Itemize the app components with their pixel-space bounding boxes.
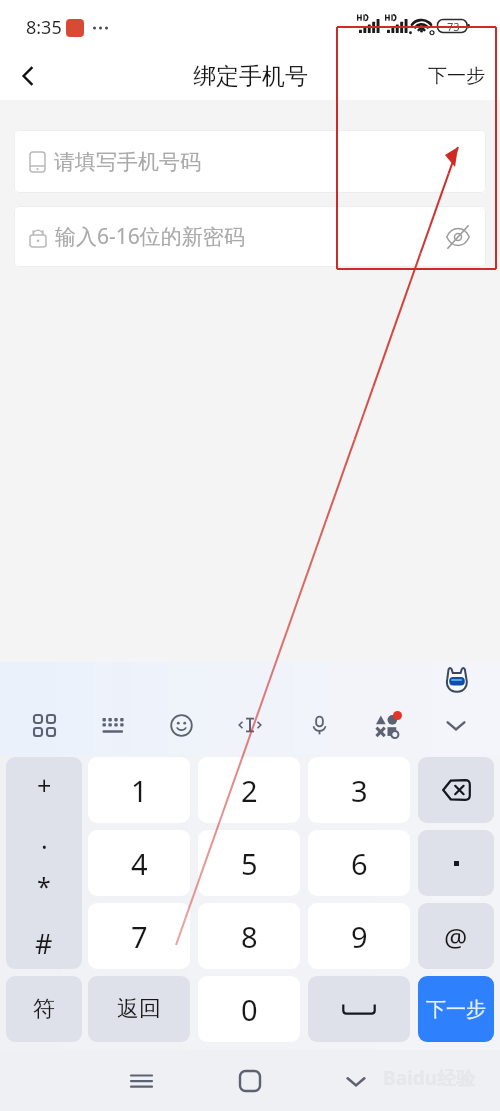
button[interactable]: 3 — [308, 757, 410, 823]
staticText: 请填写手机号码 — [54, 149, 201, 175]
button[interactable]: Voice input — [300, 706, 338, 744]
button[interactable]: @ — [418, 903, 494, 969]
button[interactable]: Keyboard layout — [94, 706, 132, 744]
button[interactable]: Assistant — [441, 664, 472, 695]
button[interactable]: Cursor — [231, 706, 269, 744]
button[interactable]: Home — [226, 1057, 274, 1105]
staticText: * — [37, 869, 51, 901]
staticText: 6 — [351, 844, 368, 883]
button[interactable]: 9 — [308, 903, 410, 969]
staticText: 73 — [447, 19, 460, 34]
button[interactable]: Show password — [440, 219, 476, 255]
staticText: · — [41, 829, 48, 861]
button[interactable]: 4 — [88, 830, 190, 896]
button[interactable]: Stickers — [368, 706, 406, 744]
staticText: 返回 — [117, 995, 161, 1023]
staticText: @ — [444, 919, 468, 954]
button[interactable]: Back — [332, 1057, 380, 1105]
staticText: 8 — [241, 917, 258, 956]
staticText: 下一步 — [426, 997, 486, 1022]
button[interactable]: 下一步 — [413, 52, 500, 100]
staticText: 0 — [241, 990, 258, 1029]
button[interactable]: 5 — [198, 830, 300, 896]
button[interactable]: . — [418, 830, 494, 896]
button[interactable]: Hide keyboard — [437, 706, 475, 744]
button[interactable]: Recent apps — [117, 1057, 165, 1105]
staticText: 3 — [351, 771, 368, 810]
staticText: 输入6-16位的新密码 — [55, 222, 245, 251]
button[interactable]: 请填写手机号码 — [14, 130, 486, 193]
staticText: 1 — [131, 771, 148, 810]
staticText: 5 — [241, 844, 258, 883]
staticText: 8:35 — [26, 15, 62, 40]
button[interactable]: 6 — [308, 830, 410, 896]
staticText: Baidu经验 — [383, 1065, 476, 1091]
button[interactable]: symbols — [6, 757, 82, 969]
staticText: 4 — [131, 844, 148, 883]
button[interactable]: Space — [308, 976, 410, 1042]
button[interactable]: 1 — [88, 757, 190, 823]
button[interactable]: 7 — [88, 903, 190, 969]
staticText: 7 — [131, 917, 148, 956]
staticText: 符 — [33, 995, 55, 1023]
button[interactable]: 输入6-16位的新密码 — [14, 206, 486, 267]
button[interactable]: 8 — [198, 903, 300, 969]
button[interactable]: 2 — [198, 757, 300, 823]
button[interactable]: Back — [0, 52, 56, 100]
button[interactable]: Backspace — [418, 757, 494, 823]
button[interactable]: Apps — [25, 706, 63, 744]
button[interactable]: 0 — [198, 976, 300, 1042]
button[interactable]: 符 — [6, 976, 82, 1042]
staticText: # — [35, 925, 53, 957]
staticText: + — [37, 768, 52, 800]
staticText: 绑定手机号 — [193, 62, 308, 91]
staticText: 9 — [351, 917, 368, 956]
button[interactable]: Emoji — [162, 706, 200, 744]
button[interactable]: 下一步 — [418, 976, 494, 1042]
staticText: 下一步 — [428, 64, 485, 88]
staticText: 2 — [241, 771, 258, 810]
button[interactable]: 返回 — [88, 976, 190, 1042]
